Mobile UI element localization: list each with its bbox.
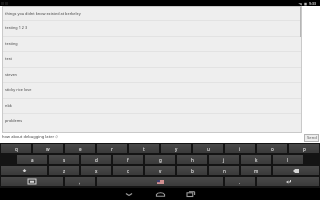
button[interactable]: v (145, 166, 175, 175)
staticText: c (127, 168, 130, 174)
button[interactable]: o (257, 144, 287, 153)
button[interactable]: j (209, 155, 239, 164)
staticText: things you didnt know existed at berkele… (5, 11, 81, 16)
button[interactable]: y (161, 144, 191, 153)
button[interactable] (257, 177, 319, 186)
button[interactable] (273, 166, 319, 175)
button[interactable]: Home (144, 188, 176, 200)
button[interactable]: n (209, 166, 239, 175)
button[interactable]: Recent apps (175, 188, 207, 200)
staticText: p (303, 146, 306, 152)
staticText: nbk (5, 103, 12, 108)
button[interactable]: Send (304, 134, 319, 142)
staticText: k (255, 157, 258, 163)
button[interactable]: x (81, 166, 111, 175)
button[interactable]: problems (2, 113, 302, 128)
staticText: testing 1 2 3 (5, 25, 28, 30)
button[interactable] (1, 177, 63, 186)
button[interactable]: things you didnt know existed at berkele… (2, 6, 302, 20)
staticText: h (191, 157, 194, 163)
staticText: x (95, 168, 98, 174)
button[interactable]: a (17, 155, 47, 164)
button[interactable]: e (65, 144, 95, 153)
staticText: f (127, 157, 129, 163)
button[interactable]: testing (2, 36, 302, 51)
button[interactable]: nbk (2, 98, 302, 113)
staticText: 9:33 (309, 1, 317, 6)
button[interactable]: f (113, 155, 143, 164)
button[interactable]: w (33, 144, 63, 153)
staticText: steven (5, 72, 17, 77)
button[interactable]: i (225, 144, 255, 153)
button[interactable]: g (145, 155, 175, 164)
staticText: b (191, 168, 194, 174)
button[interactable]: . (225, 177, 255, 186)
button[interactable]: h (177, 155, 207, 164)
staticText: sticky rice love (5, 87, 32, 92)
staticText: o (271, 146, 274, 152)
staticText: a (31, 157, 34, 163)
button[interactable]: t (129, 144, 159, 153)
button[interactable]: r (97, 144, 127, 153)
staticText: v (159, 168, 162, 174)
button[interactable] (97, 177, 223, 186)
staticText: y (175, 146, 178, 152)
staticText: d (95, 157, 98, 163)
staticText: Send (307, 135, 317, 141)
button[interactable]: testing 1 2 3 (2, 20, 302, 35)
staticText: g (159, 157, 162, 163)
button[interactable]: m (241, 166, 271, 175)
staticText: r (111, 146, 113, 152)
staticText: . (239, 179, 241, 185)
staticText: q (15, 146, 18, 152)
staticText: l (287, 157, 289, 163)
staticText: j (223, 157, 225, 163)
staticText: testing (5, 41, 18, 46)
button[interactable]: q (1, 144, 31, 153)
staticText: z (63, 168, 66, 174)
button[interactable]: u (193, 144, 223, 153)
staticText: e (79, 146, 82, 152)
button[interactable]: , (65, 177, 95, 186)
staticText: test (5, 56, 12, 61)
button[interactable]: steven (2, 67, 302, 82)
button[interactable]: s (49, 155, 79, 164)
button[interactable]: l (273, 155, 303, 164)
button[interactable]: Back (113, 188, 145, 200)
staticText: w (46, 146, 50, 152)
button[interactable]: how about debugging later :) (2, 133, 304, 140)
button[interactable]: d (81, 155, 111, 164)
button[interactable]: p (289, 144, 319, 153)
staticText: u (207, 146, 210, 152)
button[interactable]: b (177, 166, 207, 175)
staticText: t (143, 146, 145, 152)
staticText: how about debugging later :) (2, 134, 58, 139)
staticText: , (79, 179, 81, 185)
button[interactable]: k (241, 155, 271, 164)
staticText: n (223, 168, 226, 174)
staticText: i (239, 146, 241, 152)
button[interactable]: sticky rice love (2, 82, 302, 97)
staticText: m (254, 168, 259, 174)
staticText: s (63, 157, 66, 163)
button[interactable]: test (2, 51, 302, 66)
button[interactable] (1, 166, 47, 175)
staticText: problems (5, 118, 23, 123)
button[interactable]: z (49, 166, 79, 175)
button[interactable]: c (113, 166, 143, 175)
